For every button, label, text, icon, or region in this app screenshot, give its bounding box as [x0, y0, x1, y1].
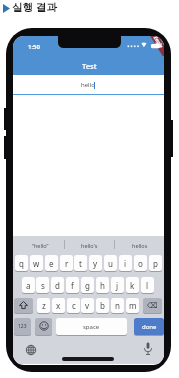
button[interactable]: e	[45, 255, 58, 271]
staticText: Eagle	[152, 36, 164, 50]
button[interactable]: z	[37, 298, 50, 313]
staticText: done	[142, 323, 157, 331]
staticText: u	[108, 258, 113, 269]
staticText: l	[146, 280, 149, 291]
staticText: g	[85, 280, 90, 291]
button[interactable]: v	[81, 298, 94, 313]
staticText: Test	[82, 61, 97, 71]
staticText: hello's	[81, 242, 98, 249]
staticText: f	[71, 280, 74, 291]
button[interactable]: u	[104, 255, 117, 271]
button[interactable]: b	[96, 298, 109, 313]
staticText: 실행 결과	[12, 0, 57, 14]
button[interactable]: y	[89, 255, 102, 271]
button[interactable]: space	[56, 318, 127, 335]
staticText: s	[41, 280, 45, 291]
staticText: “hello”	[32, 242, 49, 249]
staticText: ⌫	[147, 301, 158, 310]
staticText: h	[100, 280, 105, 291]
button[interactable]: w	[30, 255, 43, 271]
staticText: x	[56, 300, 61, 311]
button[interactable]: hellos	[122, 239, 158, 251]
staticText: a	[26, 280, 31, 291]
staticText: 123	[18, 323, 27, 330]
button[interactable]: l	[141, 277, 154, 293]
staticText: o	[138, 258, 143, 269]
staticText: i	[124, 258, 127, 269]
staticText: 1:50	[28, 43, 40, 51]
button[interactable]: f	[66, 277, 79, 293]
staticText: hellos	[132, 242, 148, 249]
button[interactable]: o	[134, 255, 147, 271]
button[interactable]: hello's	[71, 239, 107, 251]
button[interactable]: k	[126, 277, 139, 293]
staticText: w	[33, 258, 40, 269]
staticText: z	[42, 300, 46, 311]
staticText: hello	[81, 81, 95, 89]
button[interactable]: r	[60, 255, 73, 271]
button[interactable]	[35, 318, 52, 335]
button[interactable]: ⌫	[143, 298, 162, 313]
button[interactable]: c	[67, 298, 80, 313]
staticText: r	[65, 258, 69, 269]
staticText: d	[55, 280, 60, 291]
staticText: space	[83, 323, 100, 331]
button[interactable]: i	[119, 255, 132, 271]
button[interactable]: done	[134, 318, 164, 335]
button[interactable]	[14, 298, 33, 313]
staticText: e	[49, 258, 54, 269]
button[interactable]: “hello”	[22, 239, 58, 251]
button[interactable]: 123	[14, 318, 31, 335]
staticText: y	[93, 258, 98, 269]
staticText: p	[153, 258, 158, 269]
button[interactable]: p	[149, 255, 162, 271]
button[interactable]: a	[22, 277, 35, 293]
staticText: v	[85, 300, 90, 311]
button[interactable]: n	[111, 298, 124, 313]
button[interactable]: t	[74, 255, 87, 271]
staticText: k	[130, 280, 135, 291]
button[interactable]: h	[96, 277, 109, 293]
staticText: b	[100, 300, 105, 311]
staticText: t	[79, 258, 82, 269]
staticText: q	[19, 258, 24, 269]
button[interactable]: q	[15, 255, 28, 271]
button[interactable]: hello	[13, 75, 164, 94]
staticText: n	[115, 300, 120, 311]
staticText: m	[129, 300, 137, 311]
button[interactable]: j	[111, 277, 124, 293]
staticText: c	[72, 300, 76, 311]
button[interactable]: d	[51, 277, 64, 293]
button[interactable]: s	[36, 277, 49, 293]
button[interactable]: x	[52, 298, 65, 313]
staticText: j	[116, 280, 119, 291]
button[interactable]: g	[81, 277, 94, 293]
button[interactable]: m	[126, 298, 139, 313]
